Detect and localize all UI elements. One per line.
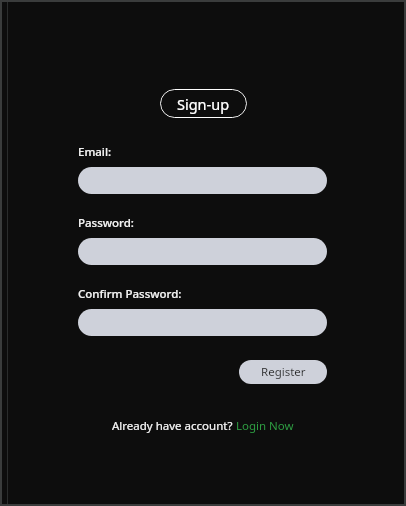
staticText: Already have account? (112, 418, 236, 434)
button[interactable]: Register (239, 360, 327, 384)
button[interactable]: Password input (78, 238, 327, 265)
staticText: Register (261, 364, 306, 380)
staticText: Sign-up (177, 94, 230, 114)
button[interactable]: Sign-up (160, 89, 247, 118)
button[interactable]: Login Now (236, 418, 294, 434)
staticText: Email: (78, 144, 112, 160)
staticText: Login Now (236, 418, 294, 434)
staticText: Password: (78, 215, 134, 231)
button[interactable]: Email input (78, 167, 327, 194)
staticText: Confirm Password: (78, 286, 182, 302)
button[interactable]: Confirm password input (78, 309, 327, 336)
